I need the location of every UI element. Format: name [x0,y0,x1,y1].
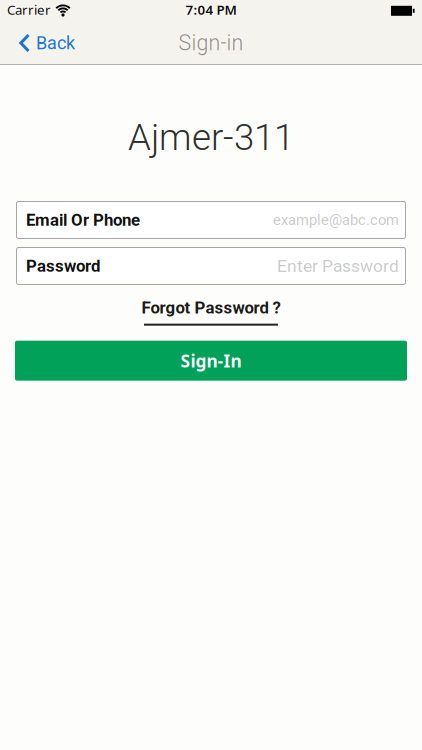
staticText: Email Or Phone [26,210,140,230]
staticText: Sign-In [180,349,241,372]
button[interactable]: Email Or Phone [16,201,406,239]
button[interactable]: Sign-In [15,326,407,381]
staticText: Forgot Password ? [141,298,280,318]
staticText: example@abc.com [273,211,399,229]
staticText: Carrier [7,1,51,18]
staticText: Sign-in [178,30,243,55]
staticText: Ajmer-311 [128,116,294,159]
staticText: 7:04 PM [185,1,236,18]
staticText: Back [36,32,75,54]
staticText: Password [26,256,100,276]
staticText: Enter Password [277,256,399,276]
button[interactable]: Forgot Password ? [141,285,280,326]
button[interactable]: Password [16,247,406,285]
button[interactable]: Back [0,32,83,54]
